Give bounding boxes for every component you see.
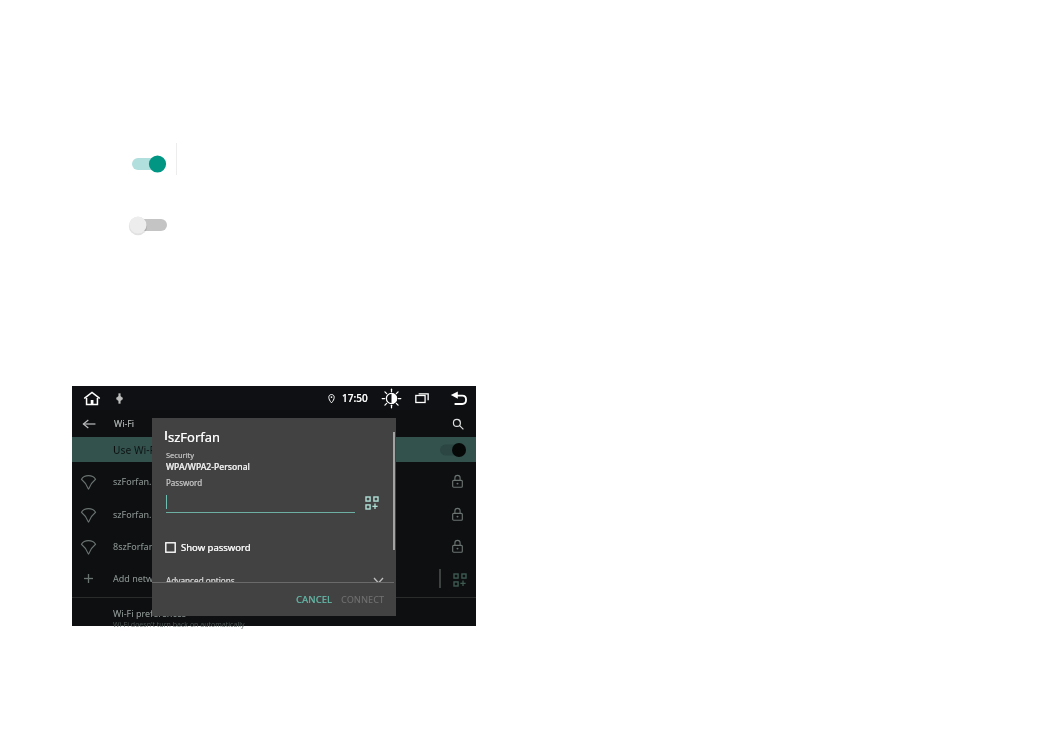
staticText: Add network <box>113 572 168 584</box>
button[interactable]: Search <box>448 414 468 434</box>
button[interactable]: CONNECT <box>338 590 388 609</box>
staticText: szForfan... <box>113 475 157 487</box>
staticText: 8szForfan <box>113 540 155 552</box>
button[interactable]: CANCEL <box>293 590 336 609</box>
button[interactable]: Show password <box>165 541 251 554</box>
staticText: WPA/WPA2-Personal <box>166 461 250 473</box>
staticText: Use Wi-Fi <box>113 443 158 457</box>
staticText: Show password <box>181 541 251 554</box>
button[interactable]: Use Wi-Fi <box>72 437 476 462</box>
staticText: Advanced options <box>166 576 235 582</box>
staticText: szForfan... <box>113 508 157 520</box>
button[interactable]: Scan QR code <box>364 495 379 510</box>
button[interactable] <box>128 214 172 236</box>
button[interactable]: szForfan... <box>72 464 476 497</box>
button[interactable]: szForfan... <box>72 497 476 530</box>
staticText: szForfan <box>168 428 221 446</box>
staticText: Wi-Fi <box>114 418 135 430</box>
button[interactable]: Back <box>448 388 468 408</box>
button[interactable]: Add network <box>72 562 476 593</box>
staticText: CANCEL <box>296 593 333 606</box>
staticText: Security <box>166 450 195 460</box>
staticText: 17:50 <box>342 391 368 405</box>
staticText: CONNECT <box>341 593 385 606</box>
button[interactable]: 8szForfan <box>72 529 476 562</box>
button[interactable]: Assistant <box>110 389 128 407</box>
button[interactable]: Navigate up <box>79 414 99 434</box>
staticText: Password <box>166 477 203 488</box>
button[interactable]: Brightness <box>381 388 401 408</box>
other: Location <box>325 392 337 404</box>
button[interactable]: Wi-Fi preferences <box>72 603 476 630</box>
button[interactable]: Home <box>81 387 103 409</box>
button[interactable] <box>130 153 170 175</box>
button[interactable]: Recent apps <box>412 388 432 408</box>
staticText: Wi-Fi preferences <box>113 607 187 619</box>
staticText: Wi-Fi doesn't turn back on automatically <box>113 620 245 630</box>
button[interactable]: Scan QR code <box>452 572 467 587</box>
